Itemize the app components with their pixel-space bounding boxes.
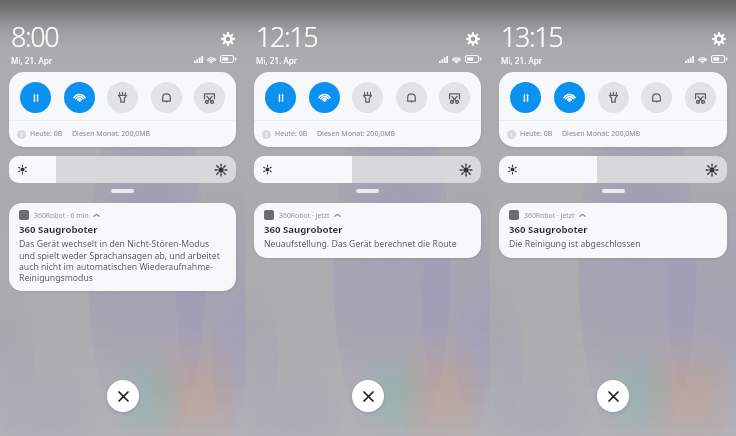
button[interactable]: Brightness	[9, 156, 236, 183]
button[interactable]: Settings	[710, 30, 728, 48]
staticText: 360Robot · 6 min	[34, 211, 89, 220]
staticText: i	[266, 131, 268, 139]
button[interactable]: Settings	[219, 30, 237, 48]
staticText: 13:15	[501, 18, 563, 55]
button[interactable]: Flashlight	[107, 82, 138, 113]
staticText: 360Robot · jetzt	[279, 211, 330, 220]
button[interactable]: Screenshot	[439, 82, 470, 113]
staticText: 360 Saugroboter	[19, 223, 98, 236]
button[interactable]: Screenshot	[685, 82, 716, 113]
button[interactable]: Flashlight	[598, 82, 629, 113]
button[interactable]: Clear all notifications	[107, 380, 139, 412]
button[interactable]: Flashlight	[352, 82, 383, 113]
staticText: Neuaufstellung. Das Gerät berechnet die …	[264, 238, 457, 250]
button[interactable]: Silent mode	[396, 82, 427, 113]
staticText: Heute: 0B	[275, 129, 308, 139]
staticText: i	[21, 131, 23, 139]
button[interactable]: Brightness	[254, 156, 481, 183]
staticText: Diesen Monat: 200,0MB	[317, 129, 396, 139]
staticText: 360 Saugroboter	[509, 223, 588, 236]
button[interactable]: Wi-Fi	[554, 82, 585, 113]
staticText: Mi, 21. Apr	[256, 55, 298, 66]
button[interactable]: Mobile data	[510, 82, 541, 113]
button[interactable]: Silent mode	[151, 82, 182, 113]
button[interactable]: Settings	[464, 30, 482, 48]
staticText: 360Robot · jetzt	[524, 211, 575, 220]
button[interactable]: Brightness	[499, 156, 727, 183]
button[interactable]: Wi-Fi	[309, 82, 340, 113]
staticText: Die Reinigung ist abgeschlossen	[509, 238, 641, 250]
button[interactable]: Silent mode	[641, 82, 672, 113]
staticText: Heute: 0B	[520, 129, 553, 139]
staticText: Heute: 0B	[30, 129, 63, 139]
staticText: i	[511, 131, 513, 139]
button[interactable]: Clear all notifications	[352, 380, 384, 412]
staticText: Mi, 21. Apr	[11, 55, 53, 66]
button[interactable]: Mobile data	[265, 82, 296, 113]
staticText: 8:00	[11, 18, 59, 55]
staticText: Diesen Monat: 200,0MB	[562, 129, 641, 139]
staticText: Mi, 21. Apr	[501, 55, 543, 66]
staticText: 360 Saugroboter	[264, 223, 343, 236]
staticText: Diesen Monat: 200,0MB	[72, 129, 151, 139]
button[interactable]: Screenshot	[194, 82, 225, 113]
button[interactable]: 360Robot · 6 min	[9, 203, 236, 291]
staticText: Das Gerät wechselt in den Nicht-Stören-M…	[19, 238, 226, 283]
staticText: 12:15	[256, 18, 318, 55]
button[interactable]: Wi-Fi	[64, 82, 95, 113]
button[interactable]: Mobile data	[20, 82, 51, 113]
button[interactable]: Clear all notifications	[597, 380, 629, 412]
button[interactable]: 360Robot · jetzt	[254, 203, 481, 258]
button[interactable]: 360Robot · jetzt	[499, 203, 727, 258]
